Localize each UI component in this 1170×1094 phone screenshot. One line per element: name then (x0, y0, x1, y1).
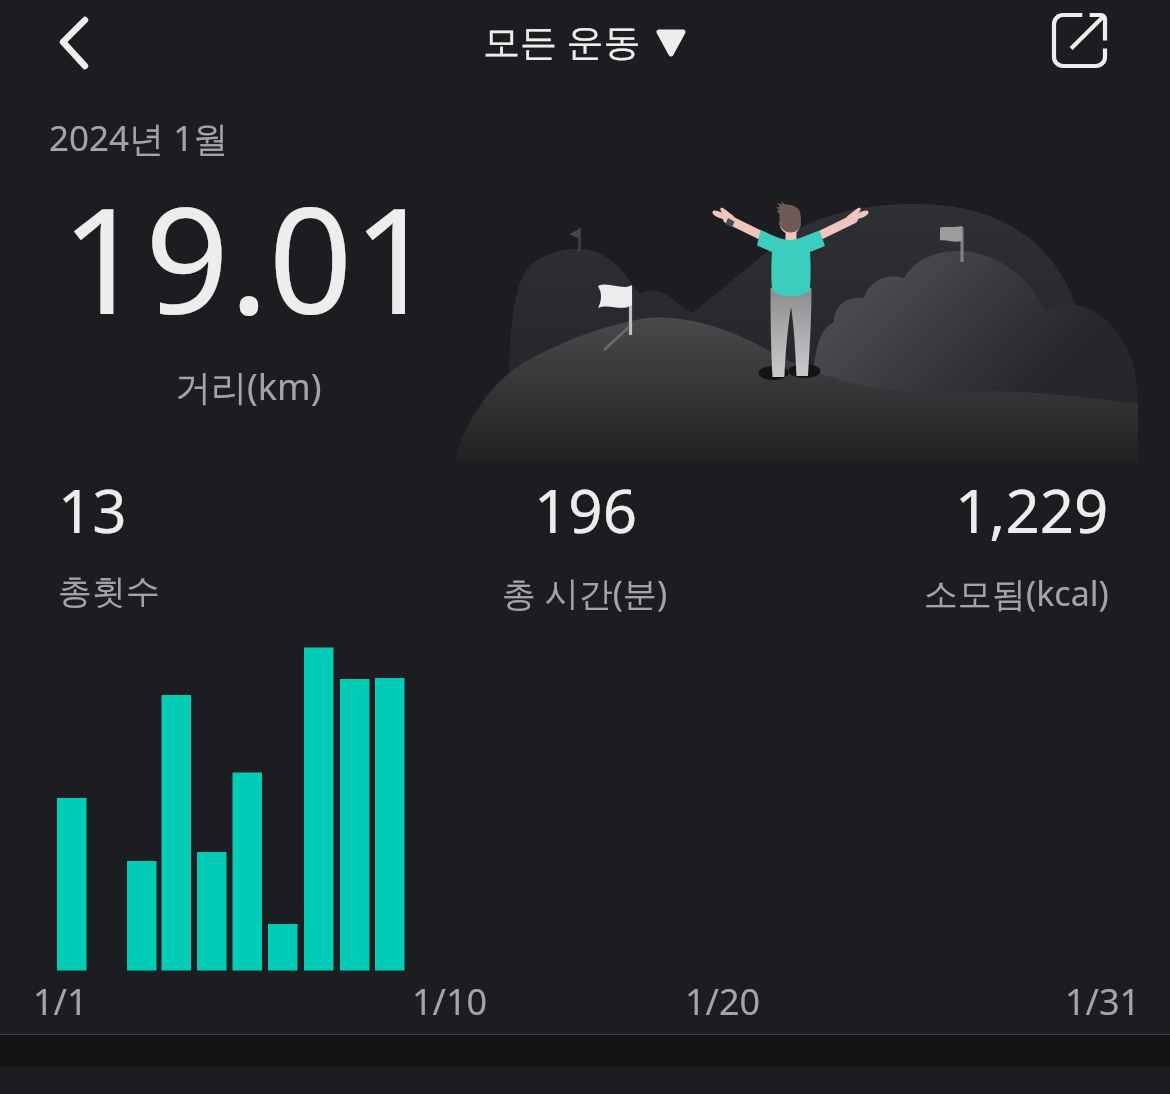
staticText: 1/10 (412, 977, 488, 1026)
staticText: 소모됨(kcal) (924, 570, 1109, 616)
staticText: 모든 운동 (483, 15, 641, 66)
staticText: 1/31 (1065, 977, 1141, 1026)
button[interactable]: 1,229 (924, 469, 1109, 616)
staticText: 196 (534, 469, 637, 551)
staticText: 총횟수 (58, 570, 160, 613)
button[interactable]: 모든 운동 (475, 9, 695, 72)
button[interactable]: 196 (502, 469, 668, 616)
staticText: 총 시간(분) (502, 570, 668, 616)
button[interactable]: 13 (58, 469, 160, 613)
staticText: 13 (58, 469, 127, 551)
staticText: 1,229 (955, 469, 1109, 551)
staticText: 1/20 (685, 977, 761, 1026)
button[interactable]: Share (1036, 2, 1118, 84)
staticText: 1/1 (33, 977, 88, 1026)
button[interactable]: Back (33, 8, 101, 76)
staticText: 2024년 1월 (49, 114, 229, 162)
staticText: 19.01 (61, 157, 437, 357)
staticText: 거리(km) (175, 362, 322, 411)
